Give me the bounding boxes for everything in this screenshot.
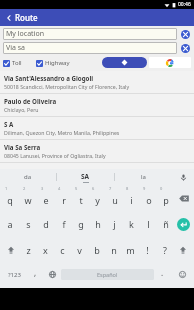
staticText: Diliman, Quezon City, Metro Manila, Phil… <box>4 129 120 136</box>
button[interactable]: Shift <box>1 237 20 263</box>
staticText: 7 <box>109 186 112 191</box>
button[interactable]: SA <box>57 169 114 185</box>
button[interactable]: Emoji <box>171 263 193 286</box>
staticText: x <box>43 244 48 256</box>
button[interactable]: ? <box>156 237 173 263</box>
staticText: l <box>147 218 150 230</box>
button[interactable]: Enter <box>174 211 193 237</box>
staticText: 2 <box>23 186 26 191</box>
button[interactable]: b <box>88 237 105 263</box>
staticText: S A <box>4 120 14 128</box>
staticText: 4 <box>58 186 61 191</box>
button[interactable]: h <box>89 211 106 237</box>
button[interactable]: . <box>154 263 171 286</box>
staticText: . <box>161 267 164 278</box>
staticText: c <box>60 244 65 256</box>
button[interactable]: 2 <box>19 185 37 211</box>
staticText: SA <box>81 172 90 181</box>
button[interactable]: Via Sa Serra <box>0 140 194 162</box>
button[interactable]: Toll <box>3 59 22 67</box>
button[interactable]: Change language <box>44 263 61 286</box>
staticText: s <box>26 218 31 230</box>
staticText: 3 <box>41 186 44 191</box>
button[interactable]: g <box>72 211 89 237</box>
staticText: Via Sa Serra <box>4 143 41 151</box>
staticText: q <box>7 194 13 206</box>
button[interactable]: da <box>0 169 56 185</box>
button[interactable]: v <box>71 237 88 263</box>
button[interactable]: Shift <box>173 237 193 263</box>
button[interactable]: 8 <box>123 185 140 211</box>
button[interactable]: Via Sant'Alessandro a Giogoli <box>0 71 194 93</box>
button[interactable]: Español <box>61 269 154 280</box>
staticText: Chiclayo, Peru <box>4 106 39 113</box>
staticText: 9 <box>143 186 146 191</box>
staticText: 00:46 <box>178 1 191 8</box>
button[interactable]: 3 <box>37 185 55 211</box>
button[interactable]: 9 <box>140 185 157 211</box>
button[interactable]: c <box>54 237 71 263</box>
button[interactable]: Clear text <box>180 29 191 40</box>
button[interactable]: d <box>37 211 55 237</box>
staticText: i <box>130 194 133 206</box>
button[interactable]: z <box>20 237 37 263</box>
staticText: 6 <box>92 186 95 191</box>
button[interactable]: m <box>122 237 139 263</box>
button[interactable]: Paulo de Oliveira <box>0 94 194 116</box>
button[interactable]: la <box>115 169 172 185</box>
staticText: d <box>43 218 49 230</box>
button[interactable]: , <box>27 263 44 286</box>
staticText: ?123 <box>8 271 21 279</box>
button[interactable]: f <box>55 211 72 237</box>
button[interactable]: Start navigation <box>102 57 147 68</box>
staticText: la <box>141 173 146 181</box>
button[interactable]: ?123 <box>1 263 27 286</box>
button[interactable]: ñ <box>157 211 174 237</box>
staticText: Route <box>15 12 38 23</box>
button[interactable]: 5 <box>72 185 89 211</box>
staticText: ? <box>163 244 167 256</box>
staticText: v <box>77 244 82 256</box>
button[interactable]: j <box>106 211 123 237</box>
button[interactable]: a <box>1 211 19 237</box>
button[interactable]: s <box>19 211 37 237</box>
button[interactable]: Backspace <box>174 185 193 211</box>
staticText: h <box>95 218 101 230</box>
button[interactable]: Navigate up <box>3 12 15 24</box>
staticText: o <box>146 194 152 206</box>
button[interactable]: n <box>105 237 122 263</box>
staticText: ! <box>146 244 149 256</box>
button[interactable]: My location <box>3 28 177 40</box>
button[interactable]: 7 <box>106 185 123 211</box>
staticText: f <box>62 218 66 230</box>
button[interactable]: Via sa <box>3 42 177 54</box>
button[interactable]: 1 <box>1 185 19 211</box>
button[interactable]: Clear text <box>180 43 191 54</box>
staticText: a <box>7 218 13 230</box>
button[interactable]: l <box>140 211 157 237</box>
button[interactable]: 6 <box>89 185 106 211</box>
staticText: 5 <box>75 186 78 191</box>
button[interactable]: x <box>37 237 54 263</box>
staticText: g <box>78 218 84 230</box>
staticText: Paulo de Oliveira <box>4 97 57 105</box>
staticText: 1 <box>5 186 8 191</box>
staticText: z <box>26 244 31 256</box>
staticText: e <box>43 194 49 206</box>
button[interactable]: Search with Google <box>149 57 191 68</box>
staticText: m <box>126 244 135 256</box>
button[interactable]: Highway <box>36 59 70 67</box>
staticText: Highway <box>45 59 70 67</box>
button[interactable]: ! <box>139 237 156 263</box>
button[interactable]: 0 <box>157 185 174 211</box>
staticText: 8 <box>126 186 129 191</box>
button[interactable]: 4 <box>55 185 72 211</box>
staticText: Via Sant'Alessandro a Giogoli <box>4 74 94 82</box>
staticText: k <box>129 218 134 230</box>
button[interactable]: k <box>123 211 140 237</box>
button[interactable]: Voice input <box>172 169 194 185</box>
button[interactable]: S A <box>0 117 194 139</box>
staticText: y <box>95 194 100 206</box>
staticText: b <box>94 244 100 256</box>
